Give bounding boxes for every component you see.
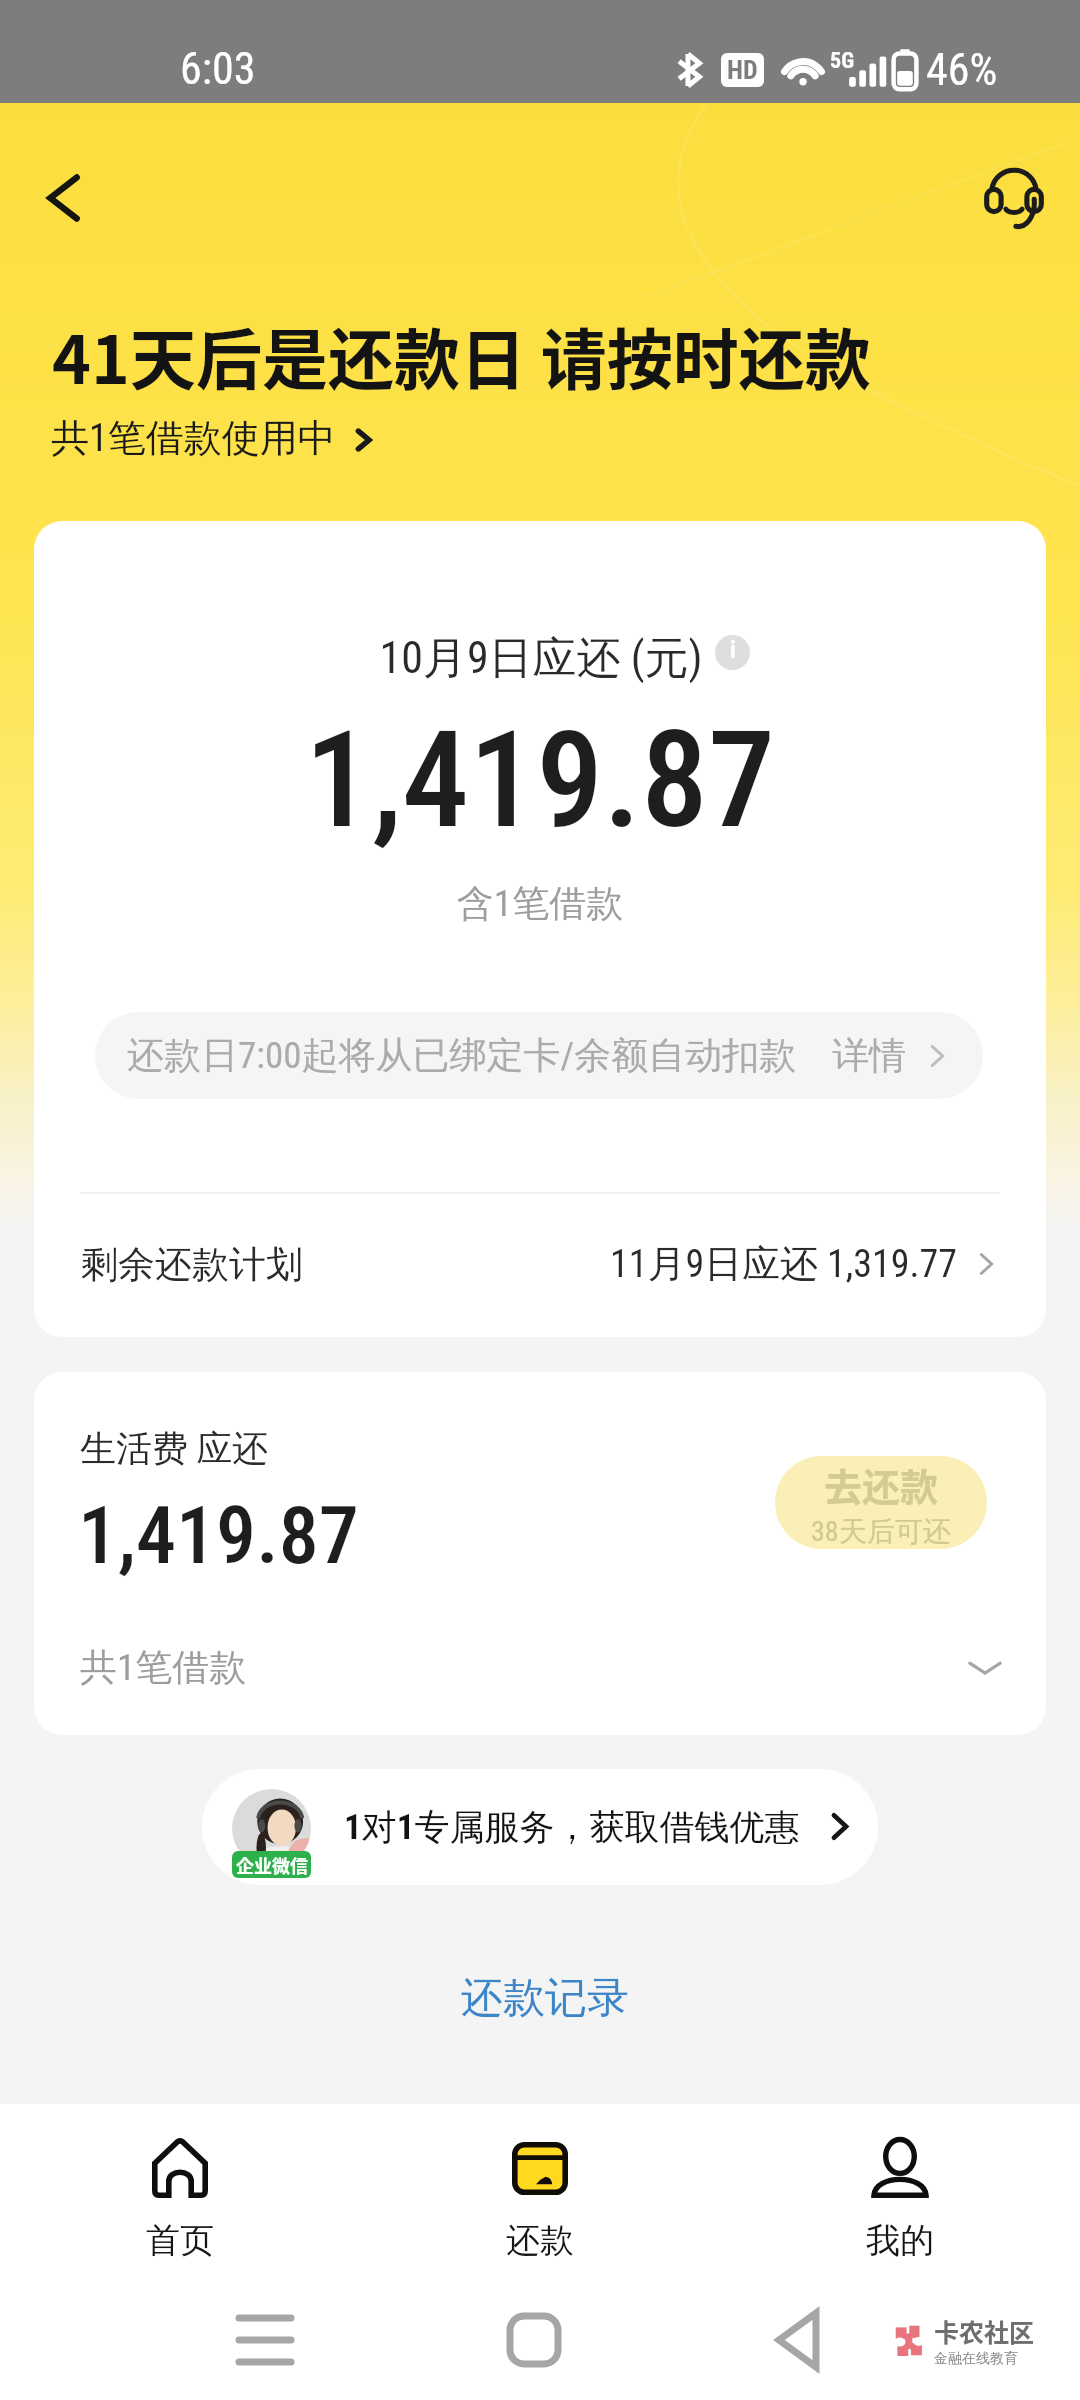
staticText: 1,419.87: [78, 1489, 359, 1583]
button[interactable]: 企业微信: [202, 1769, 878, 1885]
staticText: 详情: [832, 1032, 906, 1079]
staticText: 含1笔借款: [34, 880, 1046, 927]
staticText: 剩余还款计划: [81, 1241, 303, 1288]
staticText: 首页: [146, 2219, 214, 2262]
button[interactable]: 共1笔借款: [34, 1622, 1046, 1712]
staticText: 共1笔借款使用中: [51, 414, 336, 462]
staticText: 1,419.87: [34, 702, 1046, 859]
staticText: 还款: [506, 2219, 574, 2262]
staticText: 5G: [830, 48, 855, 74]
staticText: 10月9日应还 (元): [35, 631, 1046, 686]
staticText: 41天后是还款日 请按时还款: [52, 307, 871, 403]
staticText: HD: [727, 55, 758, 85]
staticText: 共1笔借款: [80, 1644, 247, 1691]
staticText: 我的: [866, 2219, 934, 2262]
staticText: 46%: [926, 44, 998, 96]
button[interactable]: 首页: [0, 2104, 360, 2262]
button[interactable]: 去还款: [775, 1456, 987, 1549]
button[interactable]: Back: [21, 156, 105, 240]
staticText: 1对1专属服务，获取借钱优惠: [344, 1805, 800, 1849]
button[interactable]: 还款日7:00起将从已绑定卡/余额自动扣款: [95, 1012, 983, 1099]
staticText: 生活费 应还: [80, 1426, 269, 1471]
button[interactable]: 剩余还款计划: [34, 1206, 1046, 1322]
button[interactable]: 还款: [360, 2104, 720, 2262]
staticText: 企业微信: [236, 1852, 308, 1878]
staticText: 6:03: [180, 43, 256, 95]
button[interactable]: 共1笔借款使用中: [51, 414, 378, 462]
staticText: 去还款: [824, 1457, 939, 1512]
staticText: 11月9日应还 1,319.77: [610, 1240, 958, 1288]
button[interactable]: Info: [715, 635, 750, 670]
staticText: 卡农社区: [934, 2313, 1035, 2349]
button[interactable]: 我的: [720, 2104, 1080, 2262]
staticText: 还款日7:00起将从已绑定卡/余额自动扣款: [127, 1032, 797, 1079]
staticText: i: [730, 637, 736, 664]
staticText: 38天后可还: [811, 1514, 951, 1549]
staticText: 还款记录: [5, 1972, 1080, 2025]
button[interactable]: Customer service: [969, 154, 1059, 244]
staticText: 金融在线教育: [934, 2350, 1018, 2368]
